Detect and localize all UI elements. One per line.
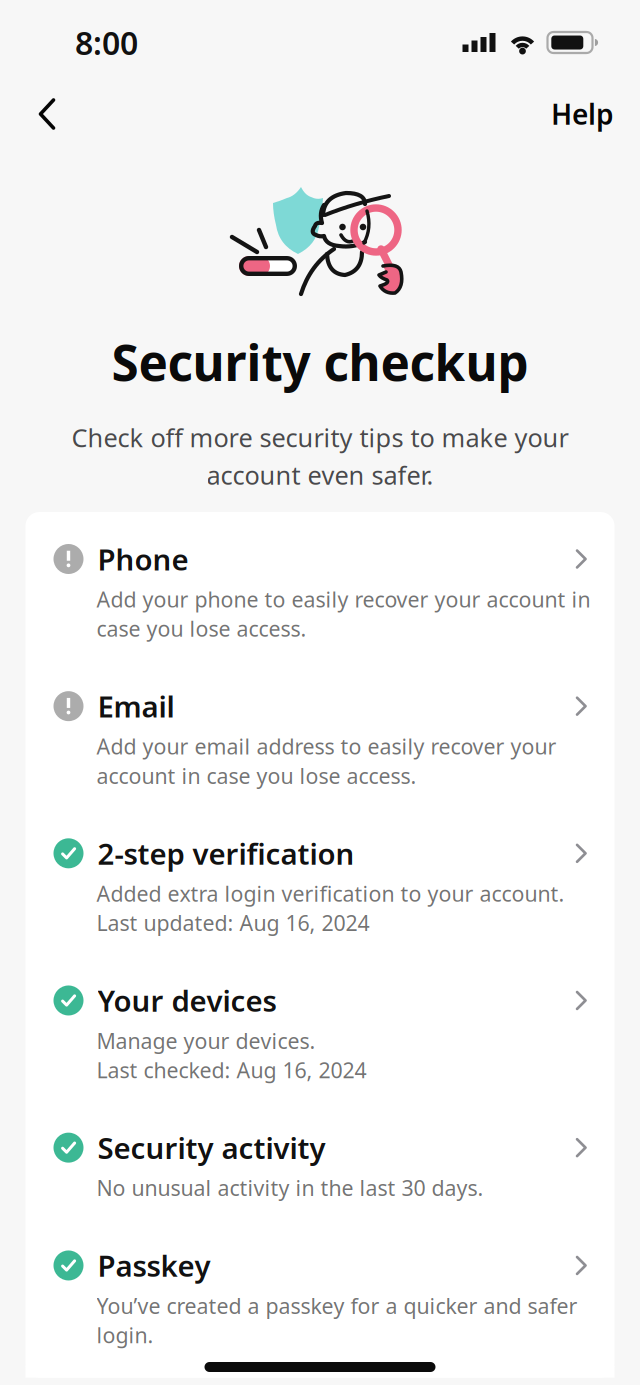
staticText: Security activity	[97, 1128, 325, 1167]
button[interactable]: Email	[25, 659, 614, 806]
staticText: Passkey	[97, 1246, 210, 1285]
staticText: case you lose access.	[96, 614, 306, 643]
button[interactable]: Security activity	[25, 1101, 614, 1218]
staticText: Added extra login verification to your a…	[96, 879, 564, 908]
staticText: 8:00	[75, 21, 138, 64]
staticText: 2-step verification	[97, 834, 354, 873]
button[interactable]: 2-step verification	[25, 806, 614, 953]
button[interactable]: Help	[551, 87, 614, 141]
staticText: Security checkup	[111, 329, 528, 394]
button[interactable]: Back	[20, 87, 74, 141]
staticText: Email	[97, 687, 174, 726]
button[interactable]: Passkey	[25, 1218, 614, 1366]
staticText: Add your phone to easily recover your ac…	[96, 585, 590, 613]
button[interactable]: Your devices	[25, 953, 614, 1101]
staticText: Manage your devices.	[96, 1026, 315, 1055]
staticText: login.	[96, 1321, 153, 1349]
staticText: You’ve created a passkey for a quicker a…	[96, 1291, 577, 1320]
staticText: Help	[551, 95, 614, 133]
button[interactable]: Phone	[25, 512, 614, 659]
staticText: Phone	[97, 539, 188, 578]
staticText: Check off more security tips to make you…	[71, 420, 568, 454]
staticText: No unusual activity in the last 30 days.	[96, 1174, 483, 1202]
staticText: Last updated: Aug 16, 2024	[96, 909, 369, 937]
staticText: Last checked: Aug 16, 2024	[96, 1056, 366, 1084]
staticText: Your devices	[97, 981, 276, 1020]
staticText: account in case you lose access.	[96, 761, 416, 790]
staticText: account even safer.	[206, 458, 433, 492]
staticText: Add your email address to easily recover…	[96, 732, 556, 760]
